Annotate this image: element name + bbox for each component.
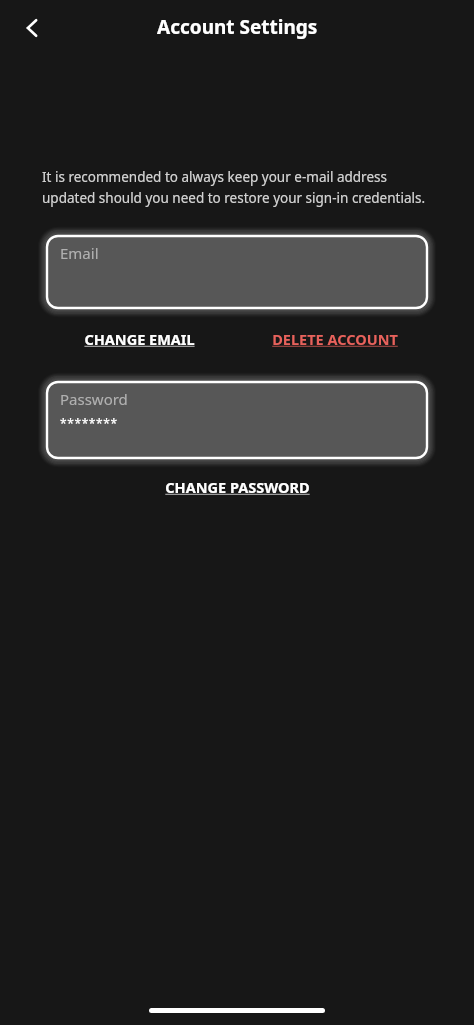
button[interactable]: Password — [42, 377, 432, 463]
staticText: Password — [60, 389, 128, 409]
button[interactable]: DELETE ACCOUNT — [237, 323, 432, 355]
staticText: DELETE ACCOUNT — [272, 329, 398, 349]
button[interactable]: CHANGE EMAIL — [42, 323, 237, 355]
button[interactable]: Back — [8, 4, 56, 52]
button[interactable]: CHANGE PASSWORD — [42, 471, 432, 503]
staticText: It is recommended to always keep your e-… — [42, 168, 432, 207]
staticText: Account Settings — [157, 14, 318, 40]
staticText: Email — [60, 243, 99, 263]
staticText: ******** — [60, 415, 118, 431]
button[interactable]: Email — [42, 231, 432, 313]
staticText: CHANGE EMAIL — [84, 329, 195, 349]
staticText: CHANGE PASSWORD — [165, 477, 310, 497]
